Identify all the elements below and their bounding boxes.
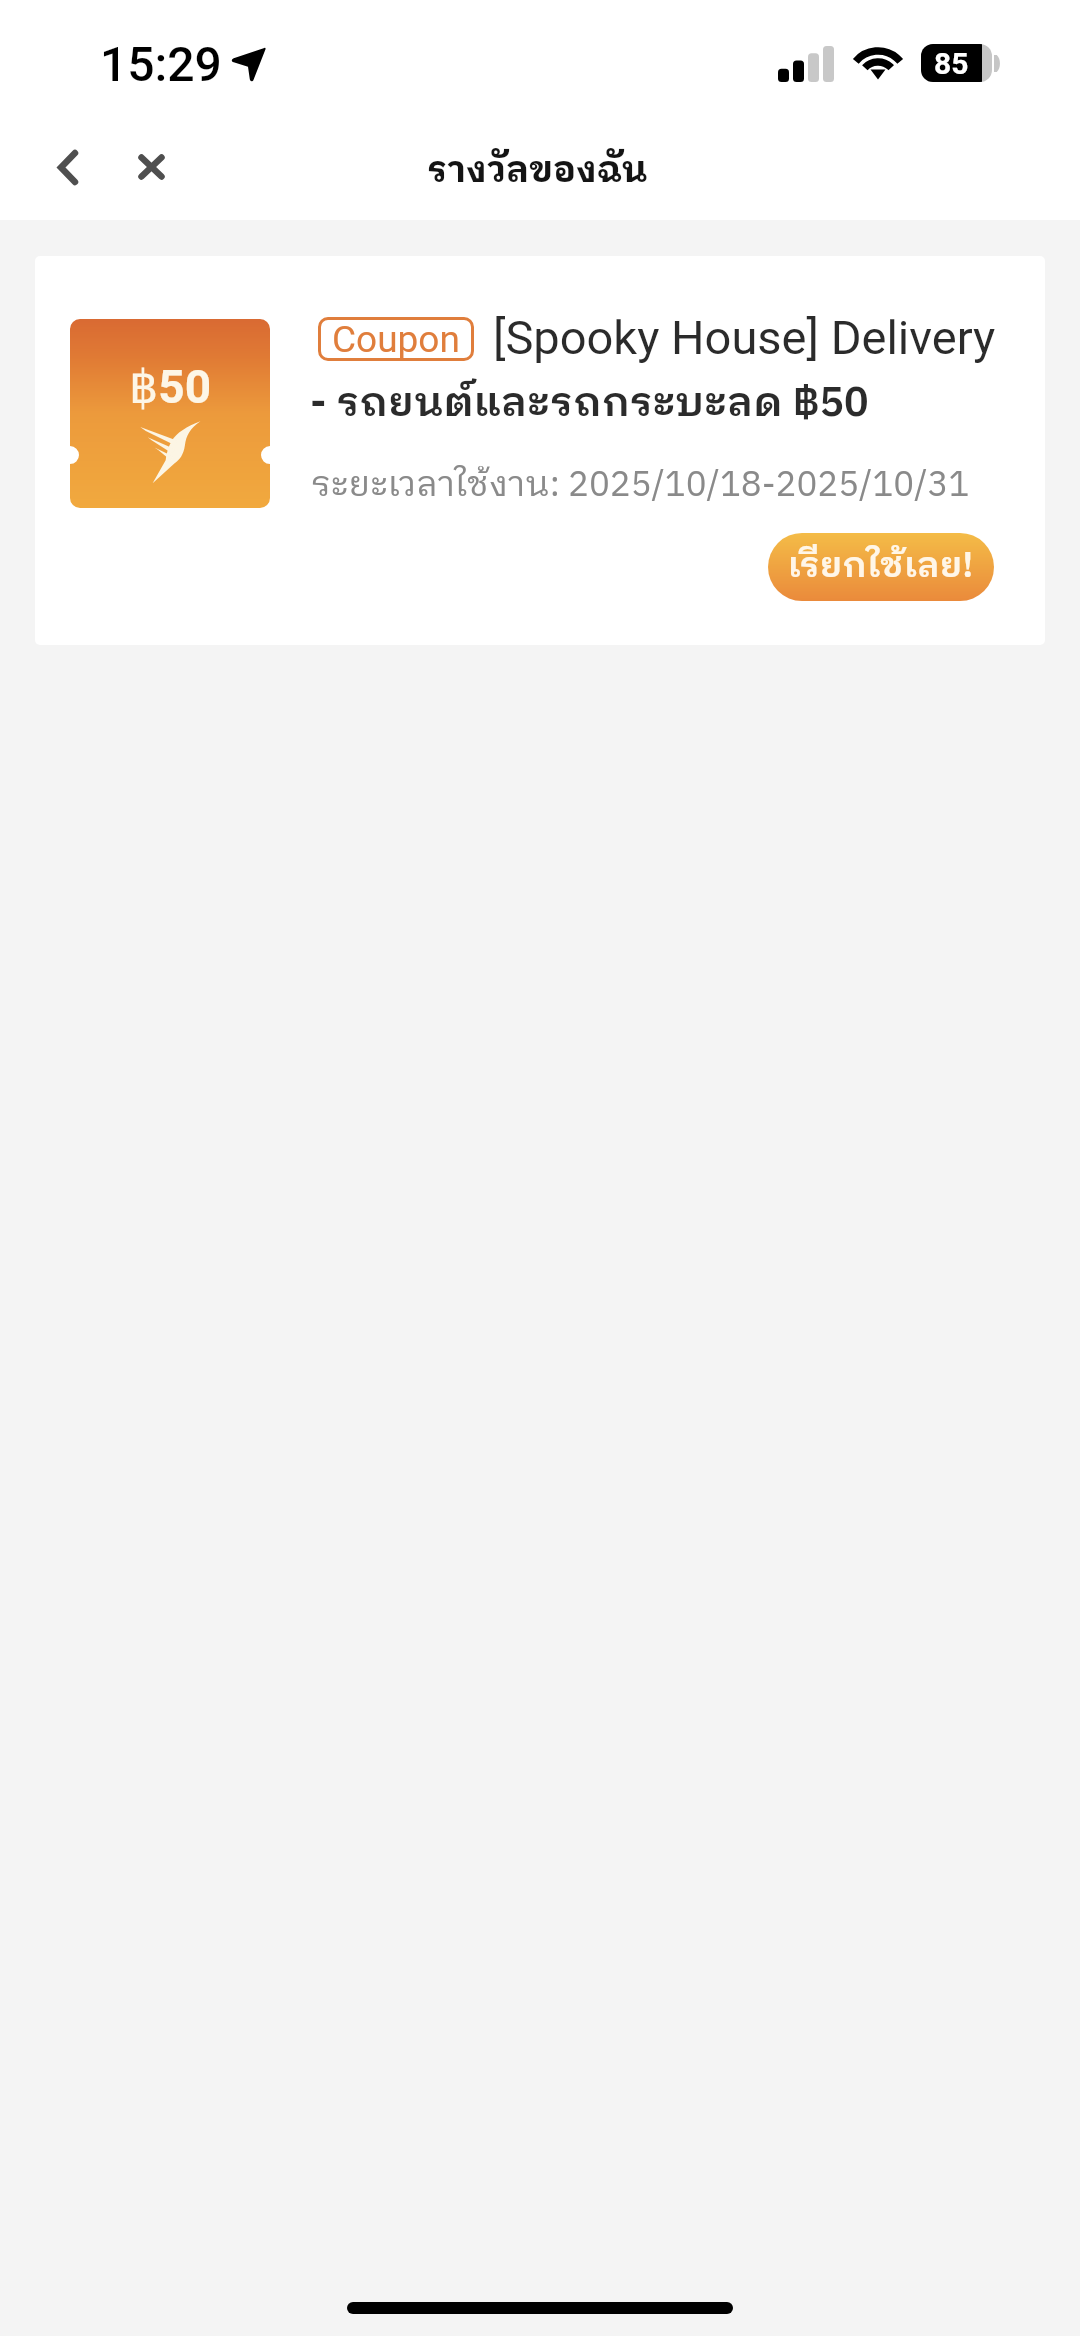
staticText: เรียกใช้เลย! bbox=[788, 537, 974, 596]
staticText: 15:29 bbox=[100, 36, 222, 92]
staticText: Coupon bbox=[332, 318, 460, 361]
button[interactable]: เรียกใช้เลย! bbox=[768, 533, 994, 601]
staticText: [Spooky House] Delivery bbox=[493, 310, 996, 365]
staticText: - รถยนต์และรถกระบะลด ฿50 bbox=[310, 370, 869, 438]
staticText: ฿50 bbox=[129, 360, 212, 414]
staticText: ระยะเวลาใช้งาน: 2025/10/18-2025/10/31 bbox=[311, 457, 970, 514]
button[interactable]: ฿50 bbox=[35, 256, 1045, 645]
button[interactable]: Close bbox=[108, 123, 194, 211]
staticText: 85 bbox=[934, 46, 969, 81]
staticText: รางวัลของฉัน bbox=[427, 142, 648, 201]
button[interactable]: Back bbox=[28, 123, 108, 211]
